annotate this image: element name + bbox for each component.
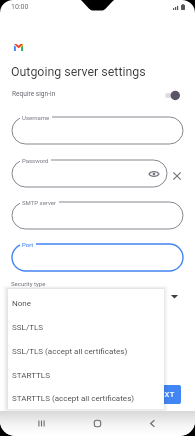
- button[interactable]: STARTTLS: [8, 363, 164, 387]
- button[interactable]: Open security type dropdown: [170, 292, 179, 301]
- button[interactable]: SSL/TLS (accept all certificates): [8, 339, 164, 363]
- staticText: STARTTLS: [12, 371, 50, 380]
- button[interactable]: Recents: [33, 415, 50, 432]
- button[interactable]: Password: [12, 160, 167, 187]
- staticText: SSL/TLS: [12, 323, 44, 332]
- button[interactable]: None: [8, 291, 164, 315]
- staticText: Password: [22, 157, 49, 164]
- staticText: Username: [22, 114, 50, 121]
- button[interactable]: STARTTLS (accept all certificates): [8, 387, 164, 409]
- button[interactable]: Username: [12, 117, 183, 144]
- button[interactable]: Require sign-in toggle: [164, 91, 180, 100]
- button[interactable]: SMTP server: [12, 202, 183, 229]
- staticText: None: [12, 299, 32, 308]
- button[interactable]: Back: [144, 415, 161, 432]
- staticText: Security type: [11, 280, 46, 287]
- button[interactable]: NEXT: [148, 385, 181, 404]
- staticText: Port: [22, 241, 34, 248]
- staticText: Outgoing server settings: [11, 64, 146, 79]
- staticText: SMTP server: [22, 199, 57, 206]
- button[interactable]: Port: [12, 244, 183, 271]
- button[interactable]: Clear: [173, 172, 181, 180]
- staticText: STARTTLS (accept all certificates): [12, 394, 135, 403]
- staticText: 10:00: [11, 3, 29, 11]
- button[interactable]: Show password: [149, 169, 159, 179]
- button[interactable]: Home: [89, 415, 106, 432]
- staticText: Require sign-in: [12, 90, 56, 98]
- button[interactable]: SSL/TLS: [8, 315, 164, 339]
- staticText: SSL/TLS (accept all certificates): [12, 347, 128, 356]
- staticText: NEXT: [154, 390, 175, 399]
